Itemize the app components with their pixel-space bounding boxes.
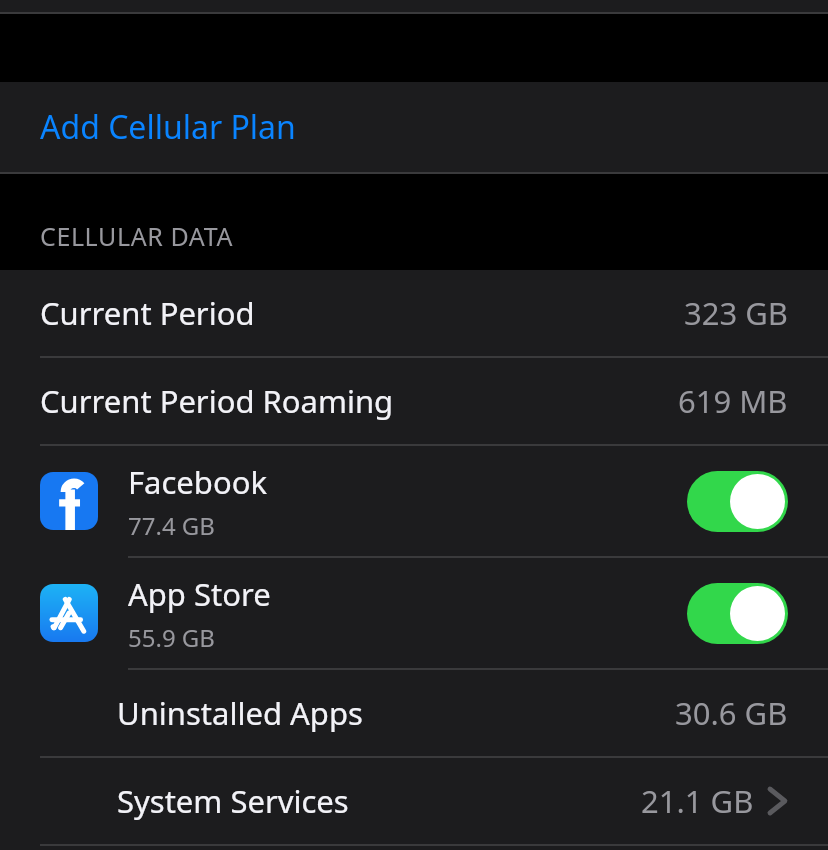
staticText: 77.4 GB	[128, 509, 215, 542]
button[interactable]: Facebook	[0, 446, 828, 556]
staticText: App Store	[128, 573, 271, 615]
staticText: 30.6 GB	[675, 692, 788, 734]
staticText: Facebook	[128, 461, 267, 503]
staticText: 21.1 GB	[641, 780, 754, 822]
button[interactable]: Current Period	[0, 270, 828, 356]
button[interactable]: Current Period Roaming	[0, 358, 828, 444]
staticText: Current Period Roaming	[40, 380, 394, 422]
staticText: 55.9 GB	[128, 621, 215, 654]
staticText: 323 GB	[684, 292, 788, 334]
button[interactable]: System Services	[0, 758, 828, 844]
staticText: 619 MB	[678, 380, 788, 422]
staticText: System Services	[117, 780, 349, 822]
button[interactable]: Toggle	[687, 583, 788, 644]
button[interactable]: Uninstalled Apps	[0, 670, 828, 756]
button[interactable]: Toggle	[687, 471, 788, 532]
staticText: Current Period	[40, 292, 255, 334]
button[interactable]: Add Cellular Plan	[0, 82, 828, 172]
staticText: Add Cellular Plan	[40, 105, 296, 149]
staticText: Uninstalled Apps	[117, 692, 363, 734]
button[interactable]: App Store	[0, 558, 828, 668]
staticText: CELLULAR DATA	[40, 219, 233, 253]
